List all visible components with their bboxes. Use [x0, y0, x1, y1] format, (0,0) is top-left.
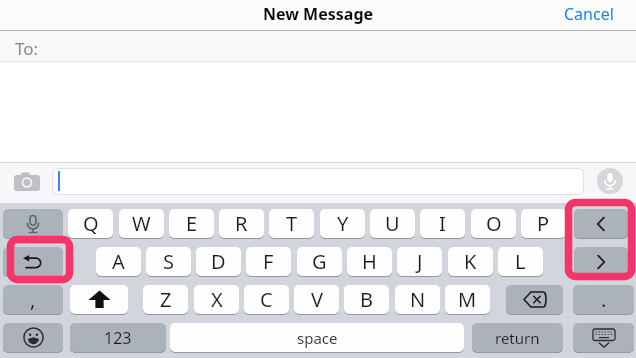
button[interactable]: C: [244, 285, 289, 314]
staticText: U: [385, 210, 400, 237]
button[interactable]: O: [471, 209, 516, 238]
staticText: K: [464, 248, 477, 275]
button[interactable]: X: [194, 285, 239, 314]
button[interactable]: [3, 247, 63, 276]
staticText: J: [417, 248, 423, 275]
button[interactable]: D: [196, 247, 241, 276]
button[interactable]: A: [96, 247, 141, 276]
staticText: W: [132, 210, 151, 237]
button[interactable]: I: [420, 209, 465, 238]
staticText: Q: [83, 210, 99, 237]
staticText: New Message: [263, 3, 374, 25]
button[interactable]: B: [344, 285, 389, 314]
staticText: Cancel: [564, 3, 614, 25]
button[interactable]: [573, 323, 634, 352]
staticText: C: [260, 286, 273, 313]
button[interactable]: [597, 168, 623, 194]
staticText: F: [263, 248, 274, 275]
button[interactable]: J: [397, 247, 442, 276]
button[interactable]: space: [170, 323, 464, 352]
button[interactable]: E: [169, 209, 214, 238]
staticText: space: [297, 328, 338, 348]
button[interactable]: Q: [68, 209, 113, 238]
button[interactable]: [3, 323, 63, 352]
button[interactable]: L: [498, 247, 543, 276]
staticText: E: [186, 210, 198, 237]
staticText: return: [495, 328, 540, 348]
staticText: I: [439, 210, 446, 237]
button[interactable]: R: [219, 209, 264, 238]
button[interactable]: Cancel: [556, 0, 622, 28]
button[interactable]: ,: [3, 285, 63, 314]
button[interactable]: [8, 168, 46, 196]
staticText: H: [362, 248, 377, 275]
button[interactable]: V: [294, 285, 339, 314]
staticText: T: [286, 210, 298, 237]
staticText: To:: [15, 37, 39, 60]
button[interactable]: Y: [320, 209, 365, 238]
staticText: Z: [160, 286, 172, 313]
button[interactable]: [574, 209, 628, 238]
button[interactable]: [0, 31, 636, 62]
staticText: V: [311, 286, 323, 313]
button[interactable]: S: [146, 247, 191, 276]
staticText: G: [312, 248, 327, 275]
button[interactable]: W: [119, 209, 164, 238]
button[interactable]: T: [269, 209, 314, 238]
button[interactable]: return: [472, 323, 563, 352]
button[interactable]: Z: [143, 285, 188, 314]
staticText: X: [211, 286, 223, 313]
staticText: A: [112, 248, 125, 275]
button[interactable]: H: [347, 247, 392, 276]
staticText: ,: [30, 286, 36, 313]
button[interactable]: [506, 285, 563, 314]
staticText: O: [486, 210, 502, 237]
button[interactable]: [574, 247, 628, 276]
staticText: D: [211, 248, 226, 275]
staticText: Y: [337, 210, 349, 237]
staticText: B: [360, 286, 373, 313]
staticText: R: [235, 210, 248, 237]
button[interactable]: .: [573, 285, 634, 314]
button[interactable]: N: [395, 285, 440, 314]
button[interactable]: P: [521, 209, 566, 238]
button[interactable]: [70, 285, 128, 314]
button[interactable]: U: [370, 209, 415, 238]
staticText: N: [410, 286, 426, 313]
staticText: S: [163, 248, 174, 275]
staticText: .: [601, 286, 607, 313]
button[interactable]: [53, 169, 583, 194]
staticText: 123: [104, 327, 132, 349]
button[interactable]: 123: [70, 323, 166, 352]
button[interactable]: M: [445, 285, 490, 314]
staticText: L: [515, 248, 526, 275]
button[interactable]: G: [297, 247, 342, 276]
button[interactable]: K: [448, 247, 493, 276]
staticText: P: [537, 210, 550, 237]
staticText: M: [458, 286, 477, 313]
button[interactable]: F: [246, 247, 291, 276]
button[interactable]: [3, 209, 63, 238]
